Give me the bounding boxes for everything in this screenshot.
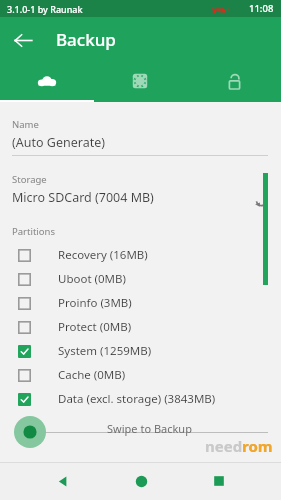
staticText: Uboot (0MB)	[58, 271, 126, 287]
staticText: (Auto Generate)	[12, 134, 105, 151]
staticText: Recovery (16MB)	[58, 247, 148, 263]
staticText: Swipe to Backup	[107, 421, 192, 436]
staticText: needrom	[205, 436, 273, 456]
staticText: Name	[12, 118, 39, 131]
button[interactable]: Cache (0MB)	[0, 363, 281, 387]
staticText: System (1259MB)	[58, 343, 152, 359]
staticText: Cache (0MB)	[58, 367, 126, 383]
button[interactable]: Proinfo (3MB)	[0, 291, 281, 315]
button[interactable]: Refresh storage	[250, 189, 272, 211]
button[interactable]: Restore tab	[93, 62, 187, 100]
button[interactable]: Unlock tab	[187, 62, 281, 100]
staticText: Protect (0MB)	[58, 319, 132, 335]
button[interactable]: Protect (0MB)	[0, 315, 281, 339]
button[interactable]: Data (excl. storage) (3843MB)	[0, 387, 281, 411]
button[interactable]: Uboot (0MB)	[0, 267, 281, 291]
staticText: Storage	[12, 173, 47, 186]
button[interactable]: Recovery (16MB)	[0, 243, 281, 267]
staticText: Micro SDCard (7004 MB)	[12, 189, 154, 206]
staticText: need	[204, 436, 242, 456]
button[interactable]: Back	[45, 464, 79, 498]
staticText: rom	[242, 436, 273, 456]
button[interactable]: Back	[9, 26, 37, 54]
button[interactable]: Backup tab	[0, 62, 93, 100]
button[interactable]: Home	[124, 464, 158, 498]
staticText: 3.1.0-1 by Raunak	[7, 3, 83, 15]
staticText: Data (excl. storage) (3843MB)	[58, 391, 216, 407]
button[interactable]: Recents	[202, 464, 236, 498]
staticText: Proinfo (3MB)	[58, 295, 132, 311]
button[interactable]: System (1259MB)	[0, 339, 281, 363]
button[interactable]: Swipe to Backup	[14, 416, 46, 448]
staticText: 11:08	[249, 2, 274, 15]
staticText: 9%+	[212, 3, 231, 15]
staticText: Partitions	[12, 225, 55, 238]
staticText: Backup	[56, 28, 116, 51]
